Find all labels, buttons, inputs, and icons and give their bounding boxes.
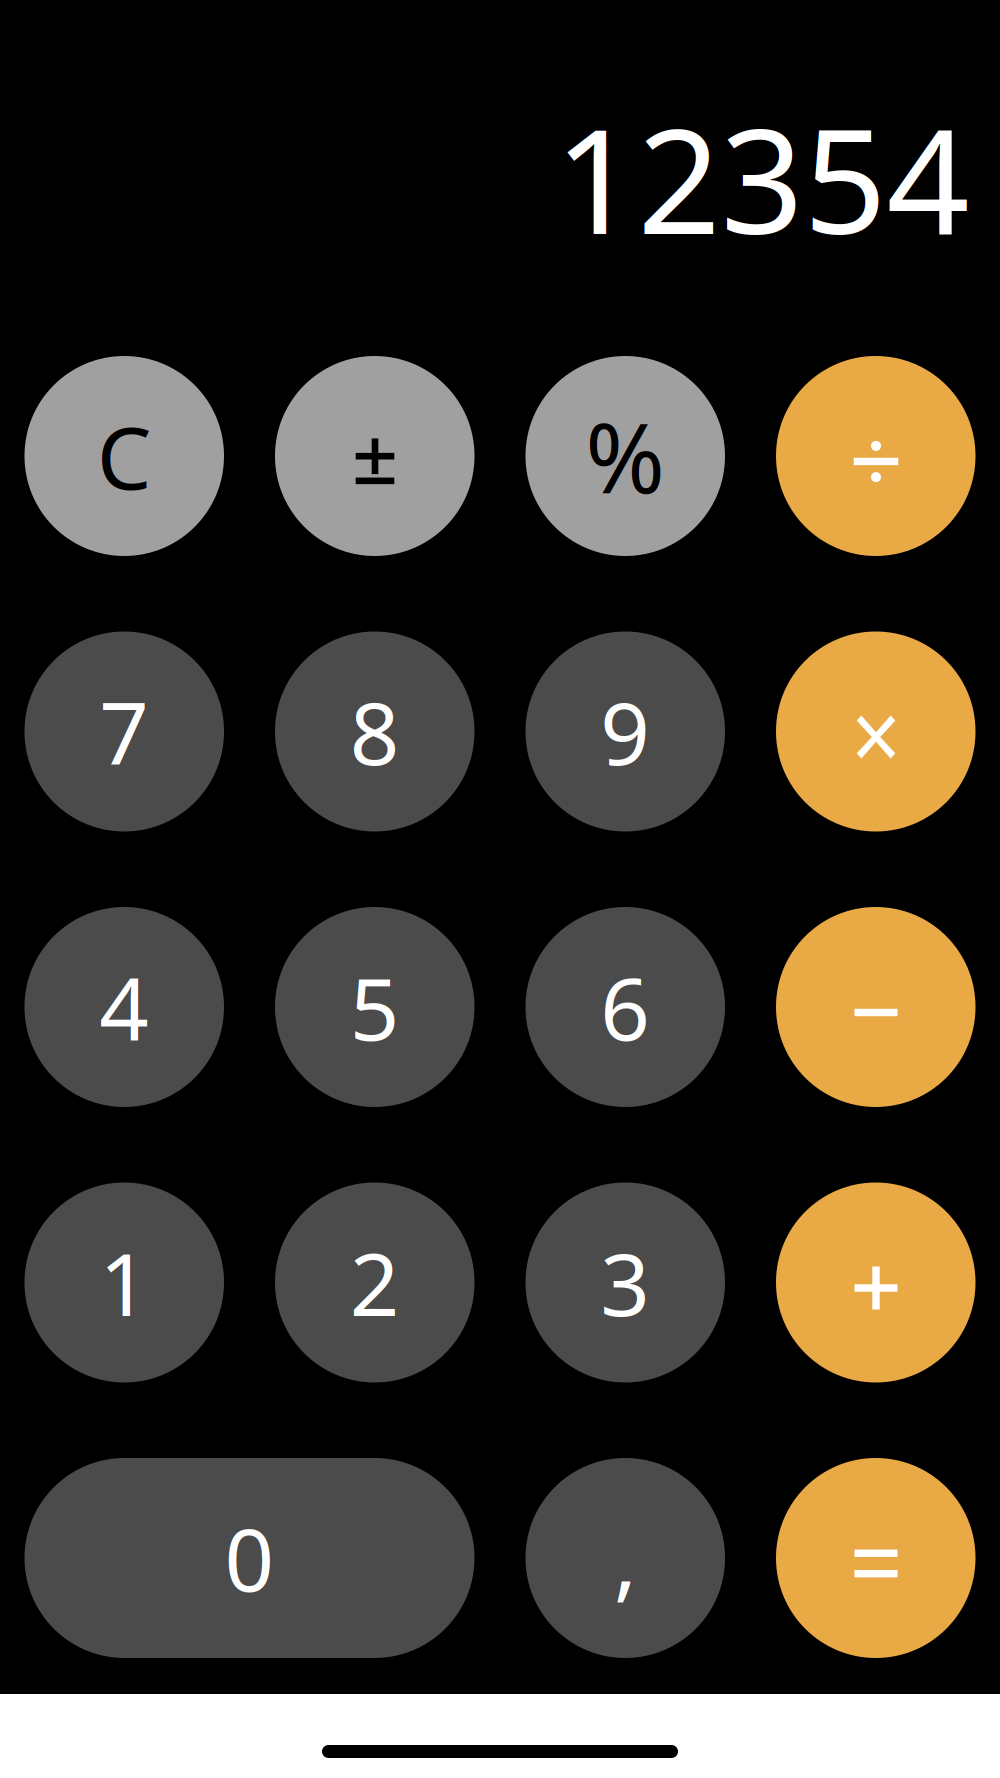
staticText: 6 bbox=[600, 949, 650, 1065]
button[interactable]: Clear bbox=[24, 356, 224, 556]
button[interactable]: 8 bbox=[275, 631, 474, 831]
button[interactable]: 9 bbox=[525, 631, 725, 831]
button[interactable]: Multiply bbox=[776, 631, 975, 831]
button[interactable]: 4 bbox=[24, 907, 224, 1107]
button[interactable]: Minus bbox=[776, 907, 975, 1107]
staticText: 1 bbox=[99, 1225, 149, 1340]
button[interactable]: 7 bbox=[24, 631, 224, 831]
staticText: 12354 bbox=[554, 81, 969, 274]
button[interactable]: Plus Minus bbox=[275, 356, 474, 556]
button[interactable]: 1 bbox=[24, 1182, 224, 1382]
staticText: , bbox=[614, 1500, 637, 1616]
button[interactable]: Percent bbox=[525, 356, 725, 556]
staticText: 5 bbox=[350, 949, 400, 1065]
button[interactable]: Decimal separator bbox=[525, 1458, 725, 1658]
staticText: 7 bbox=[99, 674, 149, 789]
staticText: 8 bbox=[350, 674, 400, 789]
staticText: C bbox=[97, 398, 152, 514]
button[interactable]: 3 bbox=[525, 1182, 725, 1382]
staticText: 2 bbox=[350, 1225, 400, 1340]
button[interactable]: Plus bbox=[776, 1182, 975, 1382]
staticText: 9 bbox=[600, 674, 650, 789]
staticText: 0 bbox=[224, 1500, 274, 1616]
button[interactable]: 6 bbox=[525, 907, 725, 1107]
button[interactable]: 0 bbox=[24, 1458, 474, 1658]
staticText: % bbox=[585, 392, 665, 520]
button[interactable]: Divide bbox=[776, 356, 975, 556]
button[interactable]: Equals bbox=[776, 1458, 975, 1658]
staticText: 4 bbox=[99, 949, 149, 1065]
button[interactable]: 5 bbox=[275, 907, 474, 1107]
button[interactable]: 2 bbox=[275, 1182, 474, 1382]
staticText: 3 bbox=[600, 1225, 650, 1340]
